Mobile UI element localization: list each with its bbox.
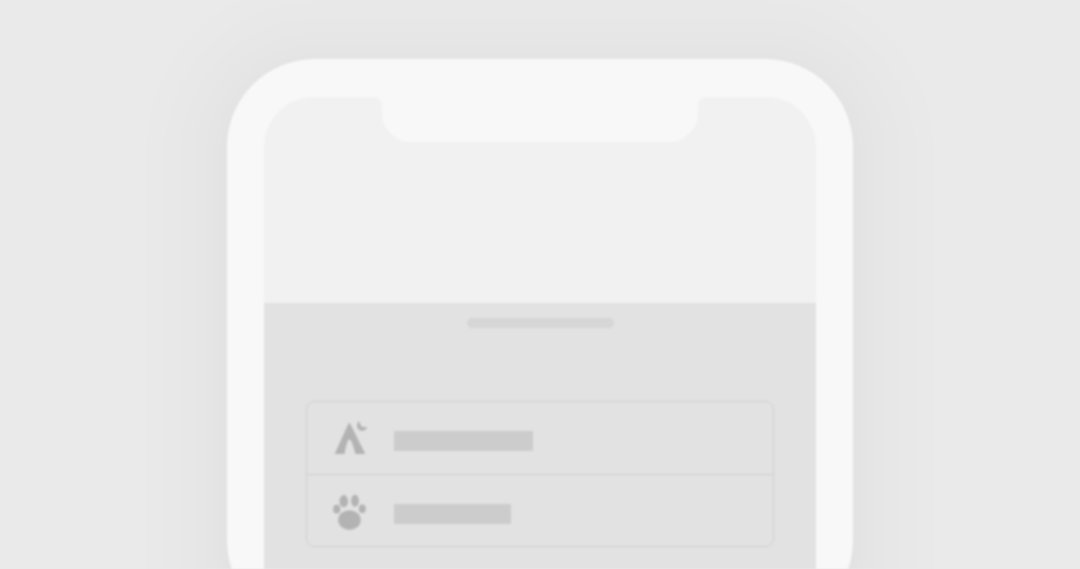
button[interactable]: Camping — [306, 401, 774, 474]
button[interactable]: Pets — [306, 475, 774, 547]
other: Camping — [331, 419, 369, 457]
other: Pets — [331, 492, 369, 530]
